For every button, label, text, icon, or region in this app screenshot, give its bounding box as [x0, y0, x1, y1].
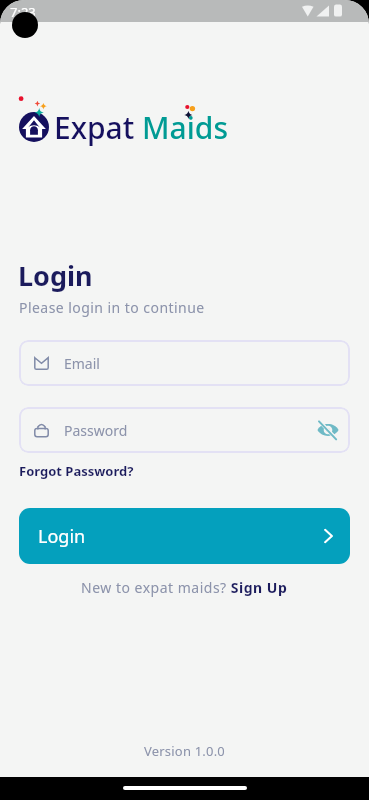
button[interactable]: Password	[19, 407, 350, 453]
staticText: Please login in to continue	[19, 298, 205, 317]
staticText: Login	[38, 524, 86, 549]
button[interactable]: Show password	[316, 418, 340, 442]
staticText: Email	[64, 354, 100, 373]
staticText: Password	[64, 421, 128, 440]
button[interactable]: New to expat maids? Sign Up	[81, 578, 288, 597]
button[interactable]: Forgot Password?	[19, 462, 134, 480]
staticText: Login	[18, 257, 93, 294]
button[interactable]: Email	[19, 340, 350, 386]
staticText: Expat Maids	[54, 107, 229, 148]
button[interactable]: Login	[19, 508, 350, 564]
staticText: Version 1.0.0	[144, 742, 225, 760]
staticText: 7:23	[10, 3, 36, 21]
